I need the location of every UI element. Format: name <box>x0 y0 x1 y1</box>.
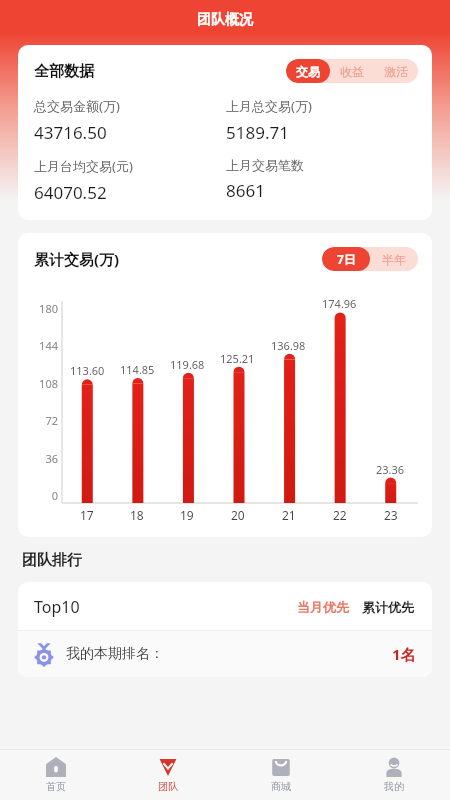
staticText: 激活 <box>384 64 408 79</box>
staticText: 我的本期排名： <box>66 645 164 663</box>
staticText: 20 <box>231 507 245 523</box>
staticText: 上月总交易(万) <box>226 97 312 115</box>
staticText: 7日 <box>337 251 356 267</box>
button[interactable]: 累计优先 <box>360 597 416 617</box>
staticText: 19 <box>180 507 194 523</box>
staticText: 团队 <box>158 780 178 793</box>
staticText: 交易 <box>296 64 320 79</box>
staticText: Top10 <box>34 596 80 618</box>
button[interactable]: 交易 <box>286 59 330 83</box>
button[interactable]: 激活 <box>374 59 418 83</box>
staticText: 18 <box>130 507 144 523</box>
staticText: 125.21 <box>220 351 255 366</box>
staticText: 174.96 <box>322 296 357 311</box>
staticText: 114.85 <box>120 362 155 377</box>
staticText: 当月优先 <box>297 599 349 615</box>
staticText: 收益 <box>340 64 364 79</box>
staticText: 144 <box>39 338 58 353</box>
button[interactable]: 团队 <box>112 750 224 800</box>
staticText: 我的 <box>384 780 404 793</box>
button[interactable]: 首页 <box>0 750 112 800</box>
staticText: 108 <box>39 376 58 391</box>
staticText: 23 <box>384 507 398 523</box>
staticText: 1名 <box>392 644 416 664</box>
button[interactable]: 我的本期排名： <box>18 631 432 677</box>
staticText: 22 <box>333 507 347 523</box>
staticText: 0 <box>51 488 58 503</box>
staticText: 5189.71 <box>226 121 289 144</box>
button[interactable]: 7日 <box>322 247 370 271</box>
staticText: 上月交易笔数 <box>226 157 304 173</box>
button[interactable]: 我的 <box>337 750 450 800</box>
staticText: 23.36 <box>376 462 405 477</box>
staticText: 72 <box>45 413 58 428</box>
staticText: 商城 <box>271 780 291 793</box>
staticText: 上月台均交易(元) <box>34 157 133 175</box>
staticText: 119.68 <box>170 357 205 372</box>
button[interactable]: 收益 <box>330 59 374 83</box>
staticText: 17 <box>80 507 94 523</box>
staticText: 21 <box>282 507 296 523</box>
staticText: 36 <box>45 451 58 466</box>
staticText: 136.98 <box>271 338 306 353</box>
staticText: 总交易金额(万) <box>34 97 120 115</box>
button[interactable]: 商城 <box>224 750 337 800</box>
staticText: 首页 <box>46 780 66 793</box>
staticText: 8661 <box>226 179 265 202</box>
button[interactable]: 半年 <box>370 247 418 271</box>
staticText: 113.60 <box>70 363 105 378</box>
staticText: 累计优先 <box>362 599 414 615</box>
staticText: 43716.50 <box>34 121 107 144</box>
staticText: 全部数据 <box>34 62 94 81</box>
staticText: 团队排行 <box>22 551 82 570</box>
staticText: 团队概况 <box>197 11 253 29</box>
staticText: 180 <box>39 301 58 316</box>
staticText: 半年 <box>382 252 406 267</box>
button[interactable]: 当月优先 <box>295 597 351 617</box>
staticText: 64070.52 <box>34 181 107 204</box>
staticText: 累计交易(万) <box>34 249 120 269</box>
